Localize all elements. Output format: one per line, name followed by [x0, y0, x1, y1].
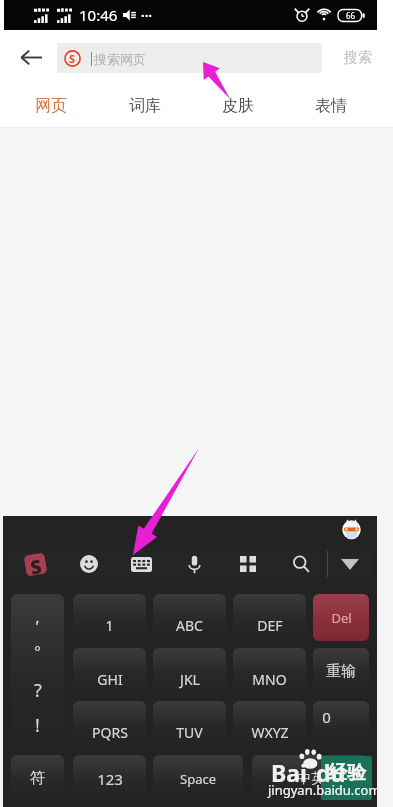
staticText: 123	[97, 769, 123, 789]
staticText: MNO	[252, 670, 287, 689]
button[interactable]: 表情	[284, 84, 377, 127]
staticText: 1	[105, 616, 114, 635]
button[interactable]: Voice input	[168, 548, 221, 580]
staticText: ,	[35, 605, 40, 628]
button[interactable]: Delete	[313, 594, 369, 641]
button[interactable]: Symbols	[11, 755, 64, 802]
button[interactable]: Search	[274, 548, 327, 580]
button[interactable]: MNO	[233, 648, 306, 695]
staticText: 搜索	[344, 49, 372, 67]
button[interactable]: 网页	[4, 84, 98, 127]
staticText: 符	[30, 769, 45, 788]
staticText: ?	[34, 678, 42, 703]
staticText: jingyan.baidu.com	[268, 781, 381, 799]
staticText: Bai	[271, 757, 307, 788]
button[interactable]: 0	[313, 701, 369, 748]
staticText: Del	[331, 609, 352, 627]
button[interactable]: Punctuation	[11, 594, 64, 748]
staticText: °	[34, 641, 41, 661]
staticText: 词库	[129, 96, 161, 116]
staticText: Space	[180, 770, 216, 788]
button[interactable]: More apps	[221, 548, 274, 580]
staticText: 经验	[328, 761, 366, 785]
button[interactable]: 1	[73, 594, 146, 641]
button[interactable]: Back	[0, 31, 57, 84]
button[interactable]: Emoji	[62, 548, 115, 580]
staticText: S	[28, 553, 43, 576]
button[interactable]: PQRS	[73, 701, 146, 748]
staticText: JKL	[180, 670, 200, 689]
staticText: TUV	[176, 723, 203, 742]
button[interactable]: Hide keyboard	[328, 548, 372, 580]
staticText: 皮肤	[222, 96, 254, 116]
button[interactable]: JKL	[153, 648, 226, 695]
staticText: 搜索网页	[94, 51, 146, 67]
staticText: ···	[141, 6, 152, 24]
staticText: ABC	[176, 616, 203, 635]
staticText: 重输	[326, 662, 356, 681]
staticText: 66	[346, 10, 356, 21]
button[interactable]: Profile	[341, 519, 362, 540]
button[interactable]: 词库	[98, 84, 191, 127]
staticText: WXYZ	[251, 723, 289, 742]
button[interactable]: Sogou input	[8, 548, 62, 580]
staticText: PQRS	[92, 723, 128, 742]
button[interactable]: TUV	[153, 701, 226, 748]
staticText: 10:46	[79, 5, 118, 25]
button[interactable]: Redo	[313, 648, 369, 695]
button[interactable]: WXYZ	[233, 701, 306, 748]
staticText: !	[35, 713, 40, 738]
button[interactable]: 123	[73, 755, 146, 802]
staticText: 中英	[297, 770, 325, 788]
staticText: DEF	[257, 616, 283, 635]
button[interactable]: 皮肤	[191, 84, 284, 127]
staticText: 网页	[35, 96, 67, 116]
button[interactable]: S	[57, 43, 322, 73]
staticText: 表情	[315, 96, 347, 116]
staticText: du	[316, 757, 346, 788]
button[interactable]: 搜索	[322, 31, 393, 84]
staticText: S	[69, 51, 76, 66]
button[interactable]: GHI	[73, 648, 146, 695]
staticText: GHI	[97, 670, 123, 689]
button[interactable]: Space	[153, 755, 243, 802]
button[interactable]: DEF	[233, 594, 306, 641]
staticText: 0	[322, 707, 331, 727]
button[interactable]: ABC	[153, 594, 226, 641]
button[interactable]: Chinese English	[252, 755, 369, 802]
button[interactable]: Keyboard layout	[115, 548, 168, 580]
